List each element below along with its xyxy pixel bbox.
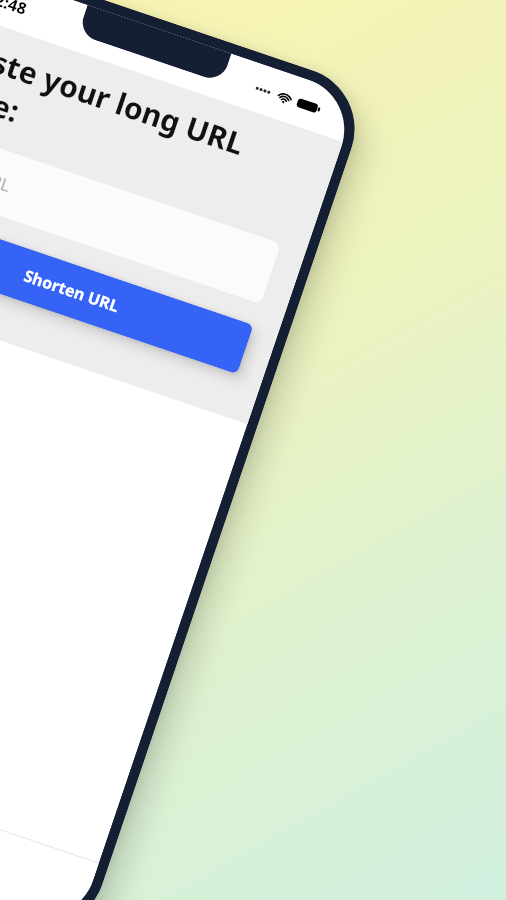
staticText: Paste your long URL here: — [0, 29, 314, 225]
staticText: 12:48 — [0, 0, 30, 20]
button[interactable]: Shorten URL — [0, 207, 254, 374]
button[interactable]: Long URL — [0, 125, 281, 304]
staticText: Shorten URL — [21, 264, 122, 317]
staticText: Long URL — [0, 150, 14, 197]
